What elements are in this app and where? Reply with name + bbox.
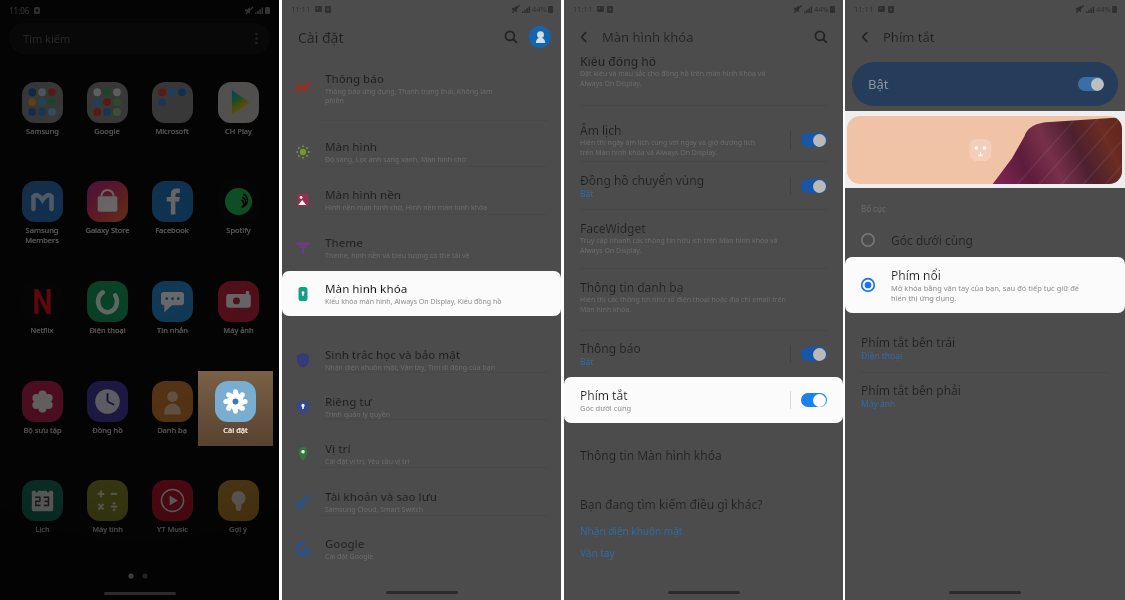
staticText: Đồng hồ chuyển vùng bbox=[580, 172, 705, 188]
button[interactable]: CH Play bbox=[205, 82, 271, 136]
staticText: Cài đặt vị trí, Yêu cầu vị trí bbox=[325, 457, 410, 467]
staticText: Phím tắt bên phải bbox=[861, 382, 961, 398]
button[interactable]: Danh bạ bbox=[139, 381, 205, 435]
staticText: Cài đặt bbox=[223, 425, 248, 435]
button[interactable]: Nhận diện khuôn mặt bbox=[580, 524, 683, 538]
button[interactable]: Kiểu đồng hồ bbox=[564, 57, 843, 106]
staticText: Samsung bbox=[26, 126, 59, 136]
staticText: Riêng tư bbox=[325, 394, 372, 410]
staticText: Phím tắt bên trái bbox=[861, 334, 956, 350]
button[interactable]: Bộ sưu tập bbox=[9, 381, 75, 435]
button[interactable]: Màn hình nền bbox=[282, 178, 561, 222]
button[interactable]: Bật bbox=[852, 62, 1118, 106]
button[interactable]: Galaxy Store bbox=[74, 181, 140, 235]
button[interactable]: Samsung Members bbox=[9, 181, 75, 245]
staticText: Phím tắt bbox=[580, 387, 628, 403]
button[interactable]: Spotify bbox=[205, 181, 271, 235]
staticText: Nhận diện khuôn mặt bbox=[580, 524, 683, 538]
staticText: Bật bbox=[868, 75, 889, 93]
button[interactable]: Phím nổi bbox=[845, 257, 1125, 313]
button[interactable]: Thông báo bbox=[564, 335, 843, 373]
staticText: Kiểu đồng hồ bbox=[580, 57, 657, 69]
button[interactable]: Đồng hồ chuyển vùng bbox=[564, 166, 843, 206]
staticText: Nhận diện khuôn mặt, Vân tay, Tìm di độn… bbox=[325, 363, 495, 373]
button[interactable]: Phím tắt bên trái bbox=[845, 330, 1125, 370]
button[interactable]: FaceWidget bbox=[564, 214, 843, 262]
button[interactable]: Toggle bbox=[801, 133, 827, 147]
button[interactable]: Cài đặt bbox=[198, 371, 273, 446]
staticText: Màn hình bbox=[325, 139, 378, 155]
staticText: Bố cục bbox=[861, 203, 886, 214]
button[interactable]: Lịch bbox=[9, 480, 75, 534]
button[interactable]: YT Music bbox=[139, 480, 205, 534]
button[interactable]: Thông tin danh bạ bbox=[564, 273, 843, 321]
button[interactable]: Back bbox=[572, 25, 596, 49]
button[interactable]: Search bbox=[809, 25, 833, 49]
button[interactable]: Account bbox=[529, 26, 551, 48]
button[interactable]: Tin nhắn bbox=[139, 281, 205, 335]
staticText: Lịch bbox=[35, 524, 50, 534]
button[interactable]: Máy tính bbox=[74, 480, 140, 534]
button[interactable]: Phím tắt bên phải bbox=[845, 378, 1125, 418]
button[interactable]: Âm lịch bbox=[564, 114, 843, 166]
button[interactable]: Máy ảnh bbox=[205, 281, 271, 335]
staticText: CH Play bbox=[225, 126, 252, 136]
button[interactable]: Sinh trắc học và bảo mật bbox=[282, 338, 561, 382]
button[interactable]: Tài khoản và sao lưu bbox=[282, 480, 561, 524]
staticText: Góc dưới cùng bbox=[891, 232, 973, 248]
button[interactable]: Facebook bbox=[139, 181, 205, 235]
button[interactable]: Màn hình bbox=[282, 130, 561, 174]
staticText: 11:11 bbox=[854, 4, 874, 14]
staticText: Tin nhắn bbox=[157, 325, 188, 335]
button[interactable]: Vị trí bbox=[282, 432, 561, 476]
staticText: Vân tay bbox=[580, 546, 615, 560]
staticText: Phím tắt bbox=[883, 28, 935, 46]
button[interactable]: Thông tin Màn hình khóa bbox=[564, 440, 843, 470]
staticText: Điện thoại bbox=[861, 350, 903, 362]
staticText: Netflix bbox=[30, 325, 54, 335]
staticText: Mở khóa bằng vân tay của bạn, sau đó tiế… bbox=[891, 283, 1080, 303]
button[interactable]: Thông báo bbox=[282, 66, 561, 110]
button[interactable]: Gợi ý bbox=[205, 480, 271, 534]
staticText: 44% bbox=[532, 4, 547, 14]
button[interactable]: Google bbox=[74, 82, 140, 136]
button[interactable]: Điện thoại bbox=[74, 281, 140, 335]
button[interactable]: Riêng tư bbox=[282, 385, 561, 429]
button[interactable]: Màn hình khóa bbox=[282, 271, 561, 316]
staticText: Bật bbox=[580, 356, 594, 368]
staticText: Tài khoản và sao lưu bbox=[325, 489, 437, 505]
button[interactable]: Samsung bbox=[9, 82, 75, 136]
staticText: Galaxy Store bbox=[85, 225, 130, 235]
button[interactable]: Vân tay bbox=[580, 546, 615, 560]
staticText: Samsung Cloud, Smart Switch bbox=[325, 505, 424, 515]
button[interactable]: Back bbox=[853, 25, 877, 49]
staticText: Vị trí bbox=[325, 441, 351, 457]
staticText: Samsung Members bbox=[25, 225, 59, 245]
button[interactable]: Toggle bbox=[801, 347, 827, 361]
staticText: Microsoft bbox=[155, 126, 189, 136]
staticText: Máy ảnh bbox=[861, 398, 896, 410]
staticText: Màn hình nền bbox=[325, 187, 402, 203]
button[interactable]: Phím tắt bbox=[564, 377, 843, 423]
button[interactable]: Tìm kiếm bbox=[9, 23, 270, 54]
button[interactable]: Search bbox=[499, 25, 523, 49]
staticText: Màn hình khóa bbox=[602, 28, 694, 46]
staticText: Bạn đang tìm kiếm điều gì khác? bbox=[580, 496, 763, 512]
button[interactable]: Đồng hồ bbox=[74, 381, 140, 435]
staticText: Thông báo ứng dụng, Thanh trạng thái, Kh… bbox=[325, 87, 493, 105]
staticText: Theme, hình nền và biểu tượng có thể tải… bbox=[325, 251, 470, 261]
staticText: 11:06 bbox=[9, 5, 30, 16]
staticText: Màn hình khóa bbox=[325, 281, 408, 297]
staticText: Máy tính bbox=[92, 524, 123, 534]
button[interactable]: Google bbox=[282, 527, 561, 571]
staticText: Bật bbox=[580, 188, 594, 200]
button[interactable]: Toggle bbox=[801, 393, 827, 407]
staticText: 11:11 bbox=[573, 4, 593, 14]
staticText: Cài đặt Google bbox=[325, 552, 374, 562]
button[interactable]: Theme bbox=[282, 226, 561, 270]
button[interactable]: Góc dưới cùng bbox=[845, 226, 1125, 254]
button[interactable]: Netflix bbox=[9, 281, 75, 335]
button[interactable]: Microsoft bbox=[139, 82, 205, 136]
button[interactable]: Toggle bbox=[801, 179, 827, 193]
button[interactable] bbox=[205, 381, 271, 435]
